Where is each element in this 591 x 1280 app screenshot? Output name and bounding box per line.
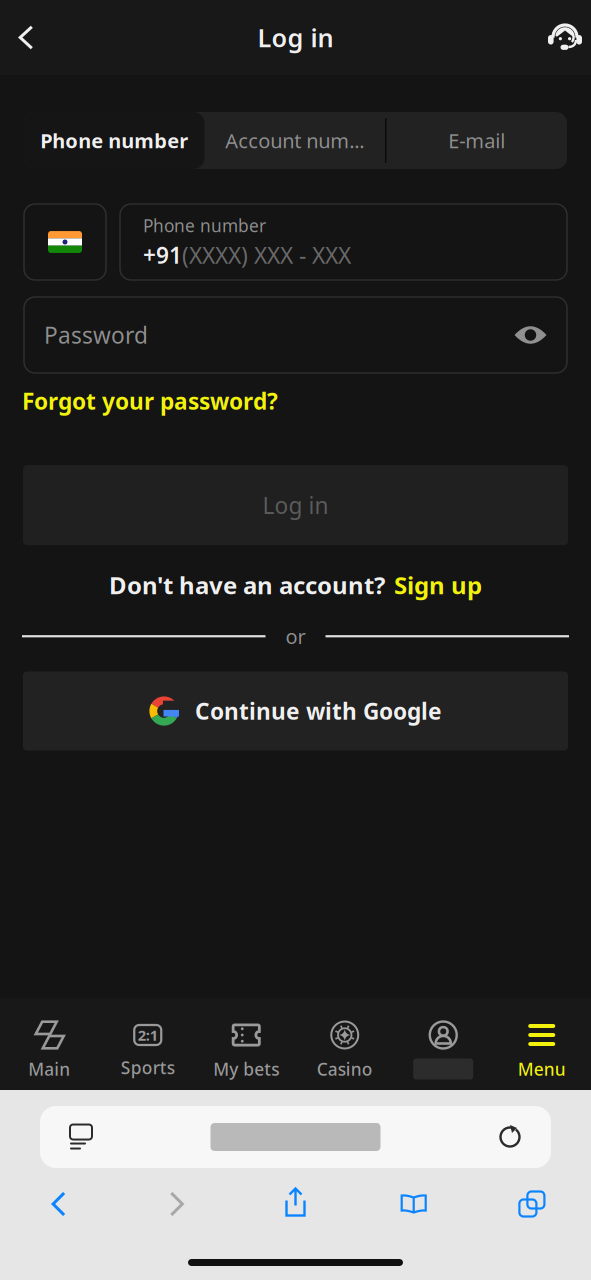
button[interactable]: Main: [0, 994, 98, 1093]
button[interactable]: 2:1: [98, 996, 197, 1092]
staticText: Phone number: [143, 214, 266, 237]
staticText: Password: [44, 320, 148, 350]
button[interactable]: Forgot your password?: [22, 383, 278, 419]
button[interactable]: Back: [0, 9, 52, 65]
staticText: (XXXX) XXX - XXX: [182, 240, 351, 270]
staticText: Sports: [121, 1056, 175, 1079]
staticText: My bets: [213, 1057, 279, 1080]
staticText: Log in: [257, 21, 333, 54]
staticText: Phone number: [40, 127, 188, 154]
button[interactable]: Casino: [295, 994, 394, 1093]
button[interactable]: Support: [539, 9, 591, 65]
staticText: Sign up: [394, 569, 482, 601]
button[interactable]: Share: [236, 1182, 355, 1226]
button[interactable]: Menu: [492, 994, 591, 1093]
staticText: Log in: [262, 490, 328, 520]
staticText: Main: [28, 1057, 70, 1080]
button[interactable]: Phone number: [24, 112, 204, 169]
button[interactable]: Back: [0, 1182, 118, 1226]
button[interactable]: E-mail: [386, 112, 567, 169]
button[interactable]: Show password: [514, 323, 547, 346]
button[interactable]: Reload: [493, 1120, 527, 1154]
button[interactable]: Tabs: [473, 1182, 591, 1226]
staticText: Menu: [518, 1057, 566, 1080]
staticText: 2:1: [138, 1025, 158, 1045]
button[interactable]: Forward: [118, 1182, 236, 1226]
staticText: Account num...: [225, 127, 364, 154]
button[interactable]: Bookmarks: [355, 1182, 473, 1226]
staticText: Casino: [317, 1057, 373, 1080]
button[interactable]: Account num...: [204, 112, 385, 169]
button[interactable]: Continue with Google: [23, 671, 568, 750]
button[interactable]: Page settings: [64, 1120, 98, 1154]
button[interactable]: Select country: [24, 204, 106, 280]
staticText: Forgot your password?: [22, 386, 278, 416]
staticText: Continue with Google: [195, 696, 442, 726]
button[interactable]: Sign up: [394, 569, 482, 601]
staticText: Don't have an account?: [109, 569, 385, 601]
button[interactable]: Log in: [23, 465, 568, 545]
staticText: E-mail: [448, 127, 505, 154]
button[interactable]: [394, 994, 492, 1093]
button[interactable]: My bets: [197, 994, 295, 1093]
staticText: +91: [143, 240, 182, 270]
staticText: or: [285, 623, 305, 650]
